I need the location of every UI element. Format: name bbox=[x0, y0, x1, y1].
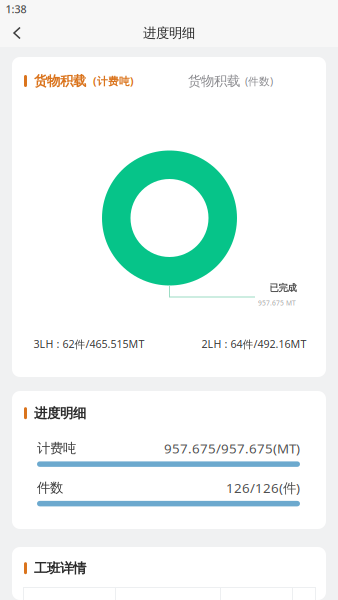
staticText: 已完成 bbox=[269, 282, 296, 294]
staticText: 126/126(件) bbox=[226, 479, 300, 497]
staticText: 货物积载 bbox=[188, 73, 240, 89]
staticText: 1:38 bbox=[5, 2, 26, 16]
staticText: 件数 bbox=[37, 480, 63, 496]
staticText: 工班详情 bbox=[34, 560, 86, 576]
staticText: (件数) bbox=[245, 74, 273, 88]
staticText: (计费吨) bbox=[93, 74, 134, 88]
staticText: 2LH : 64件/492.16MT bbox=[201, 337, 306, 351]
button[interactable]: 货物积载 bbox=[188, 71, 308, 91]
staticText: 3LH : 62件/465.515MT bbox=[33, 337, 144, 351]
staticText: 进度明细 bbox=[143, 25, 195, 41]
staticText: 进度明细 bbox=[34, 405, 86, 421]
staticText: 957.675/957.675(MT) bbox=[164, 439, 300, 457]
staticText: 计费吨 bbox=[37, 440, 76, 457]
staticText: 957.675 MT bbox=[258, 299, 296, 307]
button[interactable]: Back bbox=[0, 18, 34, 48]
staticText: 货物积载 bbox=[34, 73, 86, 89]
button[interactable]: 货物积载 bbox=[24, 71, 164, 91]
